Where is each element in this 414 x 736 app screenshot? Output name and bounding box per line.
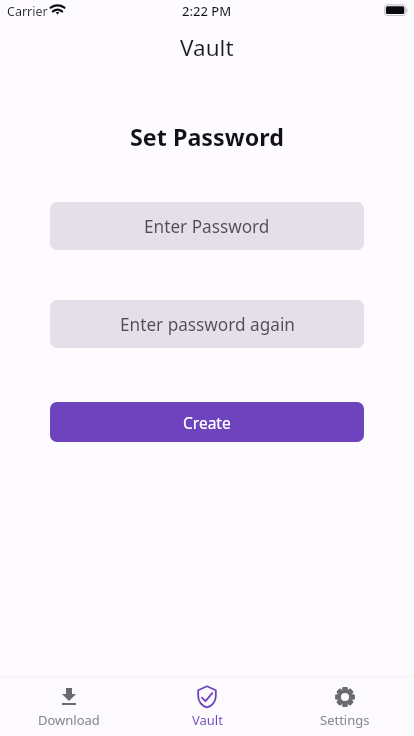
button[interactable]: Settings xyxy=(276,677,414,736)
staticText: 2:22 PM xyxy=(182,2,232,20)
staticText: Carrier xyxy=(7,3,48,20)
staticText: Enter password again xyxy=(120,313,295,336)
staticText: Vault xyxy=(192,711,223,729)
button[interactable]: Download xyxy=(0,677,138,736)
button[interactable]: Vault xyxy=(138,677,276,736)
staticText: Create xyxy=(183,412,231,433)
staticText: Set Password xyxy=(130,121,284,153)
staticText: Settings xyxy=(320,711,370,729)
staticText: Download xyxy=(38,711,100,729)
staticText: Enter Password xyxy=(144,215,270,238)
button[interactable]: Create xyxy=(50,402,364,442)
button[interactable]: Enter Password xyxy=(50,202,364,250)
button[interactable]: Enter password again xyxy=(50,300,364,348)
staticText: Vault xyxy=(180,32,234,63)
